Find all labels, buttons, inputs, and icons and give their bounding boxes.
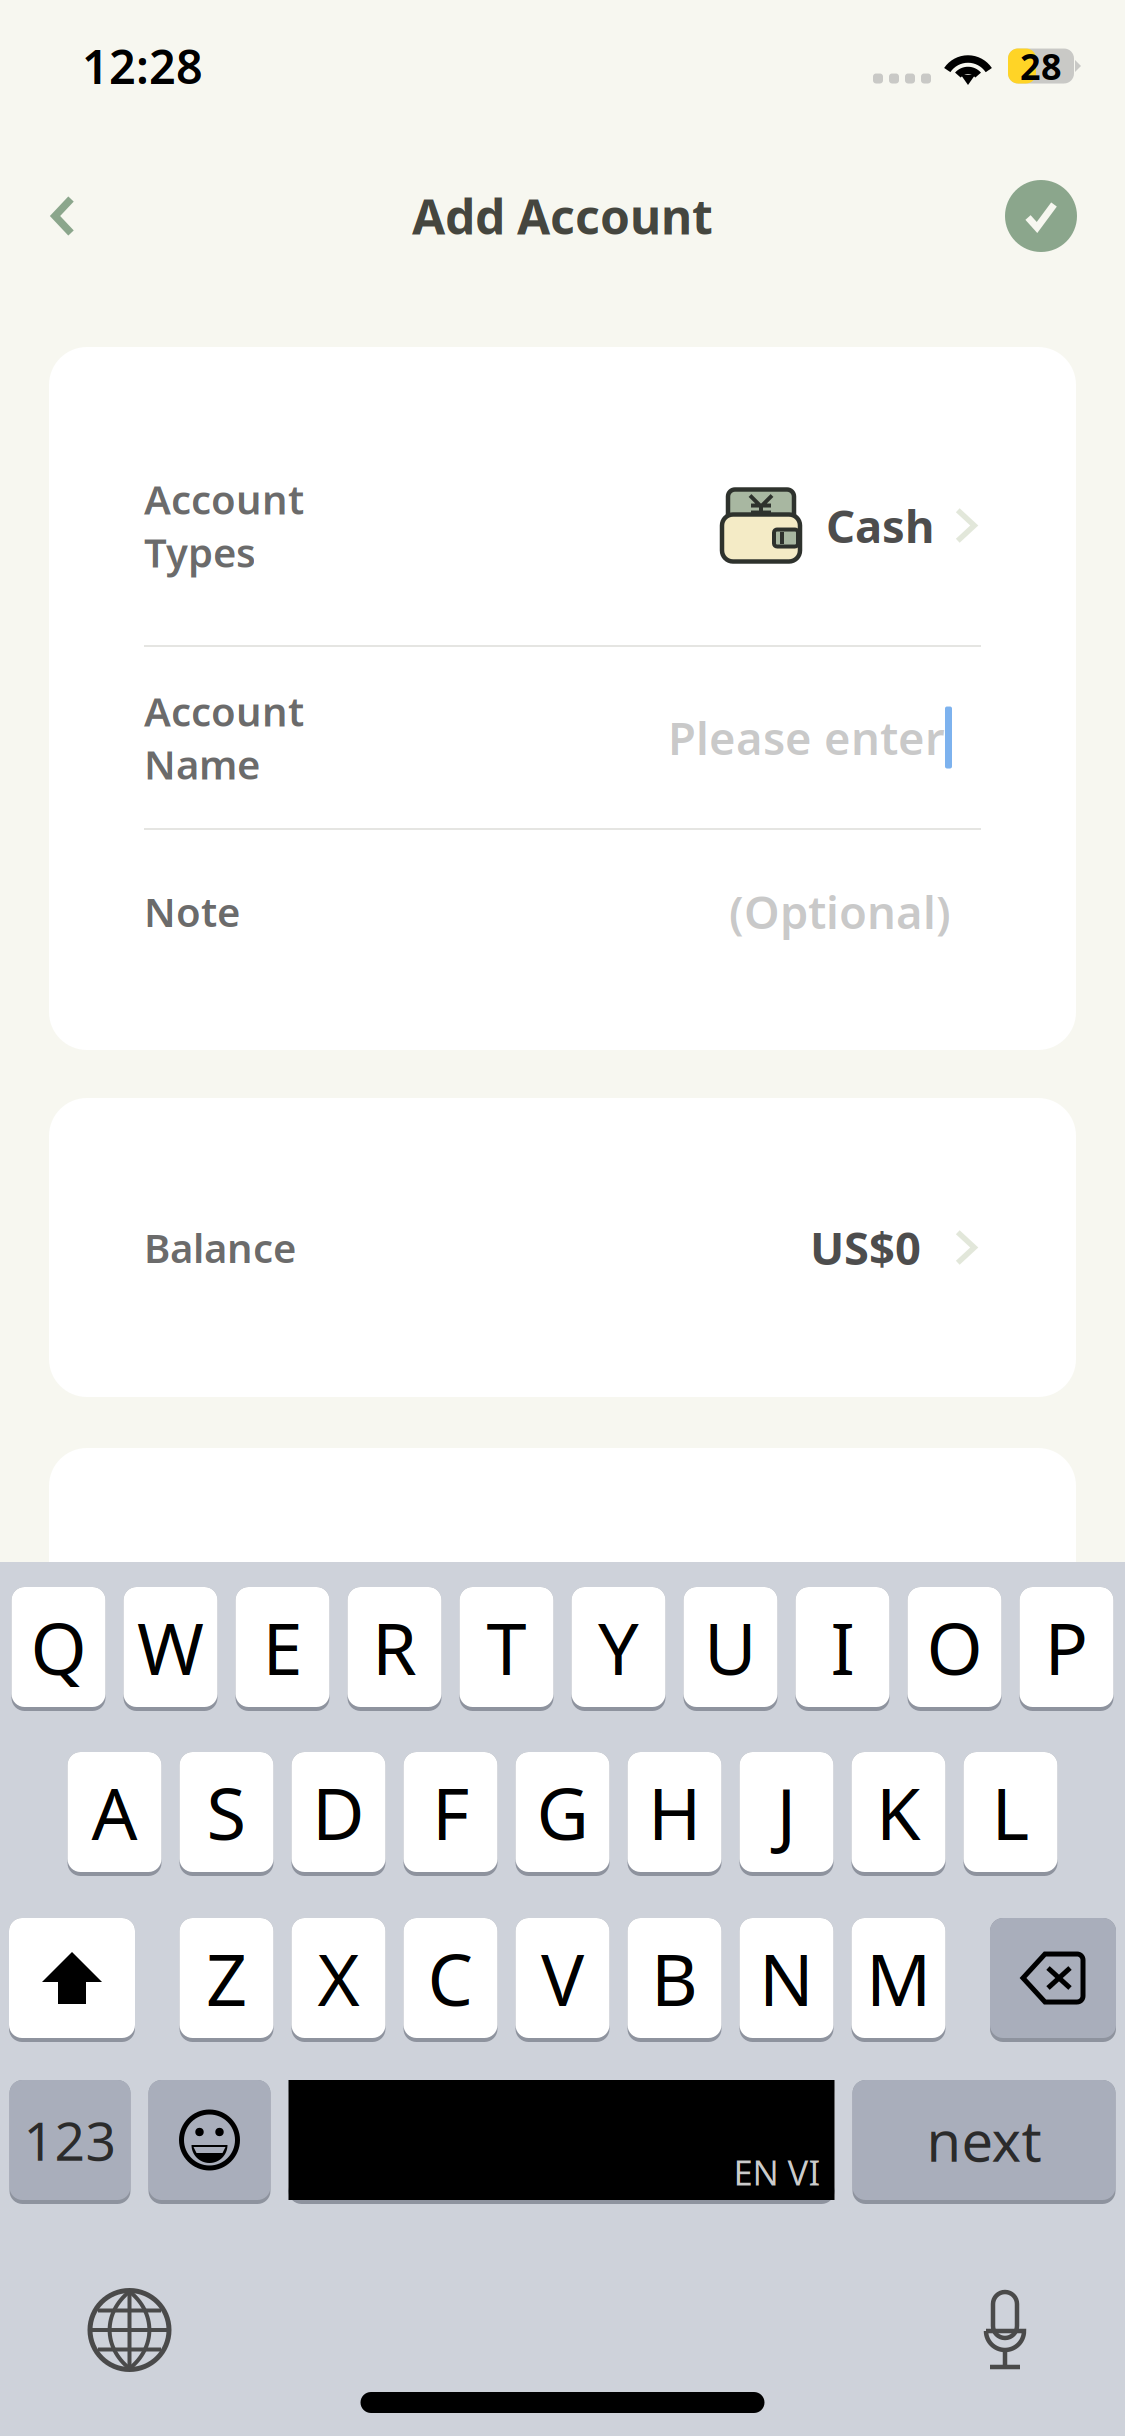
staticText: U (704, 1599, 757, 1695)
staticText: A (91, 1764, 137, 1860)
staticText: Account Name (144, 684, 304, 791)
staticText: H (648, 1764, 701, 1860)
staticText: P (1044, 1599, 1088, 1695)
button[interactable]: K (851, 1752, 945, 1876)
staticText: Note (144, 885, 240, 938)
staticText: Y (598, 1599, 639, 1695)
button[interactable]: Account Name (49, 647, 1076, 828)
button[interactable]: C (403, 1918, 497, 2042)
button[interactable]: X (291, 1918, 385, 2042)
button[interactable]: Z (179, 1918, 273, 2042)
staticText: O (926, 1599, 982, 1695)
button[interactable]: Shift (9, 1918, 135, 2042)
button[interactable]: Dictate (961, 2256, 1051, 2382)
button[interactable]: R (347, 1587, 441, 1711)
staticText: Q (30, 1599, 86, 1695)
button[interactable]: Delete (990, 1918, 1116, 2042)
button[interactable]: F (403, 1752, 497, 1876)
button[interactable]: N (739, 1918, 833, 2042)
button[interactable]: O (907, 1587, 1001, 1711)
staticText: V (541, 1930, 584, 2026)
button[interactable]: Q (11, 1587, 105, 1711)
button[interactable]: Save (981, 156, 1125, 276)
button[interactable]: M (851, 1918, 945, 2042)
button[interactable]: Y (571, 1587, 665, 1711)
staticText: (Optional) (729, 881, 951, 942)
staticText: M (866, 1930, 931, 2026)
button[interactable]: J (739, 1752, 833, 1876)
button[interactable]: B (627, 1918, 721, 2042)
staticText: R (372, 1599, 417, 1695)
button[interactable]: Change keyboard (70, 2259, 189, 2378)
staticText: S (206, 1764, 246, 1860)
staticText: 123 (23, 2105, 116, 2175)
staticText: Please enter (668, 707, 945, 768)
button[interactable]: W (123, 1587, 217, 1711)
staticText: J (776, 1764, 796, 1860)
button[interactable]: Account Types (49, 406, 1076, 645)
button[interactable]: Back (0, 157, 110, 275)
staticText: I (830, 1599, 854, 1695)
button[interactable]: S (179, 1752, 273, 1876)
staticText: Account Types (144, 472, 304, 579)
button[interactable]: I (795, 1587, 889, 1711)
staticText: C (427, 1930, 473, 2026)
staticText: L (991, 1764, 1029, 1860)
staticText: K (876, 1764, 921, 1860)
button[interactable]: Emoji (148, 2080, 270, 2204)
staticText: EN VI (733, 2149, 820, 2195)
button[interactable]: H (627, 1752, 721, 1876)
staticText: X (317, 1930, 359, 2026)
button[interactable]: Balance (49, 1098, 1076, 1397)
staticText: G (536, 1764, 588, 1860)
button[interactable]: A (67, 1752, 161, 1876)
button[interactable]: Space (288, 2080, 834, 2204)
staticText: E (262, 1599, 302, 1695)
button[interactable]: L (963, 1752, 1057, 1876)
staticText: 12:28 (82, 35, 203, 97)
staticText: Balance (144, 1221, 296, 1274)
button[interactable]: 123 (9, 2080, 130, 2204)
staticText: Cash (826, 495, 934, 556)
button[interactable]: P (1019, 1587, 1113, 1711)
button[interactable]: T (459, 1587, 553, 1711)
button[interactable]: V (515, 1918, 609, 2042)
button[interactable]: Note (49, 830, 1076, 993)
staticText: D (312, 1764, 365, 1860)
staticText: T (486, 1599, 526, 1695)
button[interactable]: E (235, 1587, 329, 1711)
staticText: N (759, 1930, 814, 2026)
button[interactable]: D (291, 1752, 385, 1876)
staticText: Add Account (412, 184, 713, 248)
staticText: B (651, 1930, 698, 2026)
staticText: US$0 (810, 1217, 921, 1278)
staticText: W (137, 1599, 204, 1695)
button[interactable]: U (683, 1587, 777, 1711)
staticText: next (926, 2103, 1041, 2177)
button[interactable]: G (515, 1752, 609, 1876)
button[interactable]: next (852, 2080, 1115, 2204)
staticText: Z (206, 1930, 247, 2026)
staticText: F (432, 1764, 469, 1860)
staticText: 28 (1020, 42, 1062, 90)
